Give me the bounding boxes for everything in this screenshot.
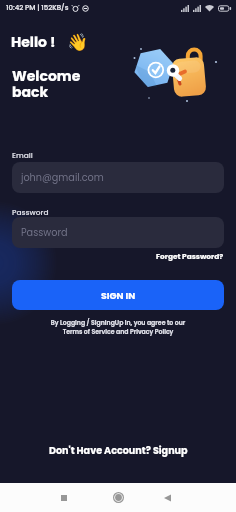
staticText: Email [12,150,33,160]
button[interactable]: Forget Password? [154,249,226,263]
staticText: By Logging / SigningUp In, you agree to … [0,318,236,336]
staticText: 10:42 PM | 152KB/s [6,3,69,13]
staticText: Don't Have Account? Signup [49,444,188,457]
button[interactable]: Don't Have Account? Signup [0,441,236,460]
staticText: Hello ! [11,32,56,52]
staticText: SIGN IN [101,289,136,302]
button[interactable]: Password [12,217,224,248]
staticText: 👋 [67,32,89,52]
button[interactable]: SIGN IN [12,280,224,310]
staticText: Password [12,207,49,217]
button[interactable]: Back [153,483,181,512]
staticText: Password [21,226,68,240]
button[interactable]: john@gmail.com [12,162,224,193]
staticText: Forget Password? [156,251,224,261]
button[interactable]: Home [104,483,132,512]
button[interactable]: Recent apps [50,483,78,512]
staticText: Welcome back [12,66,81,102]
staticText: john@gmail.com [21,171,104,185]
